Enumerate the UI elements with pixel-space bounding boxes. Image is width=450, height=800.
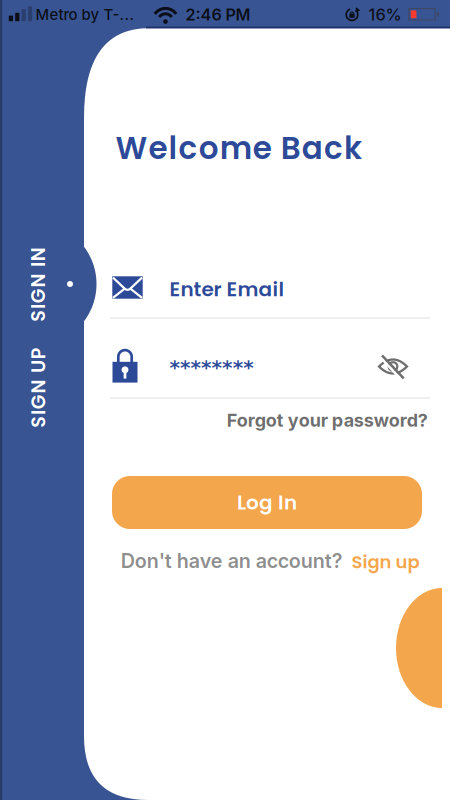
staticText: Log In <box>237 488 297 516</box>
staticText: SIGN UP <box>0 374 79 401</box>
button[interactable]: Sign up <box>351 549 419 575</box>
staticText: Forgot your password? <box>227 409 428 431</box>
staticText: Metro by T-... <box>35 6 134 24</box>
button[interactable]: Enter Email <box>169 275 284 303</box>
staticText: SIGN IN <box>1 271 75 298</box>
staticText: 2:46 PM <box>185 5 250 24</box>
button[interactable]: SIGN UP <box>0 374 79 401</box>
button[interactable]: Show password <box>376 352 410 380</box>
staticText: Don't have an account? <box>121 549 343 573</box>
button[interactable]: ******** <box>169 356 253 379</box>
staticText: Welcome Back <box>115 126 362 170</box>
staticText: ******** <box>169 356 253 379</box>
staticText: Enter Email <box>169 275 284 303</box>
button[interactable]: SIGN IN <box>1 271 75 298</box>
staticText: 16% <box>368 5 401 24</box>
button[interactable]: Log In <box>112 476 422 529</box>
staticText: Sign up <box>351 549 419 575</box>
button[interactable]: Forgot your password? <box>227 409 428 431</box>
